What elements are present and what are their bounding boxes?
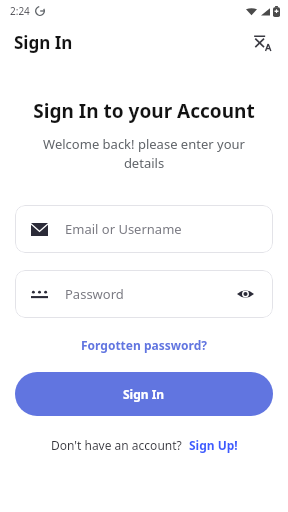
button[interactable]: Sign In <box>15 372 273 416</box>
button[interactable]: Email or Username <box>15 205 273 253</box>
staticText: 2:24 <box>10 4 30 18</box>
staticText: Welcome back! please enter your details <box>24 135 264 172</box>
staticText: Sign In to your Account <box>0 98 288 124</box>
button[interactable]: Translate <box>246 26 278 58</box>
staticText: Password <box>65 285 233 303</box>
staticText: Sign In <box>14 31 73 54</box>
button[interactable]: Sign Up! <box>189 435 238 455</box>
staticText: Sign In <box>123 386 165 402</box>
button[interactable]: Show password <box>233 282 257 306</box>
button[interactable]: Forgotten password? <box>75 335 213 355</box>
button[interactable]: Password <box>15 270 273 318</box>
staticText: Don't have an account? <box>51 437 182 453</box>
staticText: Email or Username <box>65 220 257 238</box>
